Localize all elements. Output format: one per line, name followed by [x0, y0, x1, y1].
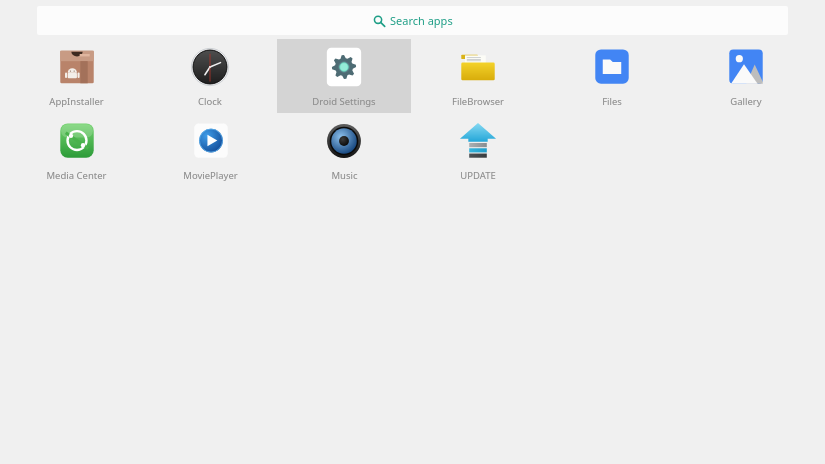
button[interactable]: UPDATE	[411, 113, 545, 187]
staticText: AppInstaller	[49, 95, 104, 108]
button[interactable]: Files	[545, 39, 679, 113]
staticText: Files	[602, 95, 622, 108]
button[interactable]: Music	[277, 113, 411, 187]
button[interactable]: Droid Settings	[277, 39, 411, 113]
staticText: Search apps	[390, 13, 453, 28]
button[interactable]: Gallery	[679, 39, 813, 113]
staticText: UPDATE	[460, 169, 496, 182]
staticText: Gallery	[730, 95, 762, 108]
staticText: MoviePlayer	[183, 169, 238, 182]
button[interactable]: AppInstaller	[9, 39, 143, 113]
button[interactable]: Clock	[143, 39, 277, 113]
button[interactable]: FileBrowser	[411, 39, 545, 113]
staticText: Music	[331, 169, 358, 182]
button[interactable]: Media Center	[9, 113, 143, 187]
button[interactable]: Search apps	[37, 6, 788, 35]
staticText: Droid Settings	[312, 95, 376, 108]
staticText: Media Center	[46, 169, 107, 182]
staticText: Clock	[198, 95, 222, 108]
button[interactable]: MoviePlayer	[143, 113, 277, 187]
staticText: FileBrowser	[452, 95, 504, 108]
